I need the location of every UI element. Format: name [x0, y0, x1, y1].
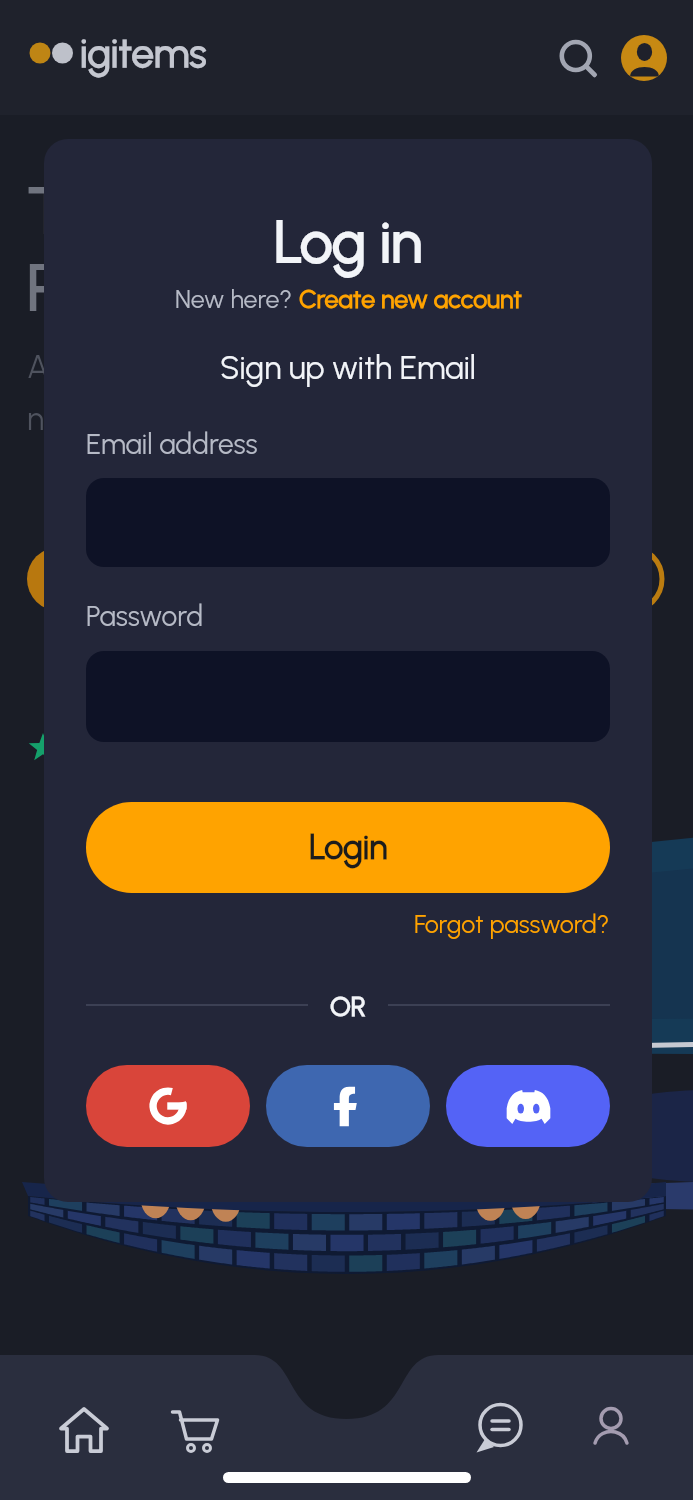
button[interactable]: Profile	[556, 1397, 666, 1463]
button[interactable]: Sign in with Discord	[446, 1065, 610, 1147]
button[interactable]: Home	[29, 1397, 139, 1463]
staticText: Forgot password?	[414, 909, 610, 939]
button[interactable]: Forgot password?	[414, 909, 610, 939]
button[interactable]: Sign in with Facebook	[266, 1065, 430, 1147]
staticText: igitems	[80, 29, 207, 77]
button[interactable]: Search	[545, 29, 603, 87]
staticText: Place	[27, 249, 178, 326]
staticText: The	[27, 172, 137, 249]
staticText: Create new account	[299, 284, 522, 314]
staticText: Login	[309, 827, 388, 868]
button[interactable]: Cart	[140, 1397, 250, 1463]
staticText: Anytime need it	[27, 348, 145, 438]
button[interactable]: Sign in with Google	[86, 1065, 250, 1147]
button[interactable]: Messages	[444, 1395, 554, 1461]
button[interactable]: igitems home	[29, 29, 207, 77]
staticText: New here?	[175, 284, 299, 314]
staticText: Log in	[44, 207, 652, 277]
button[interactable]: Account	[621, 35, 667, 81]
staticText: Email address	[86, 427, 258, 461]
staticText: OR	[330, 990, 366, 1020]
button[interactable]: Create new account	[299, 284, 522, 314]
button[interactable]: Login	[86, 802, 610, 893]
staticText: Password	[86, 599, 204, 633]
staticText: Sign up with Email	[44, 349, 652, 387]
